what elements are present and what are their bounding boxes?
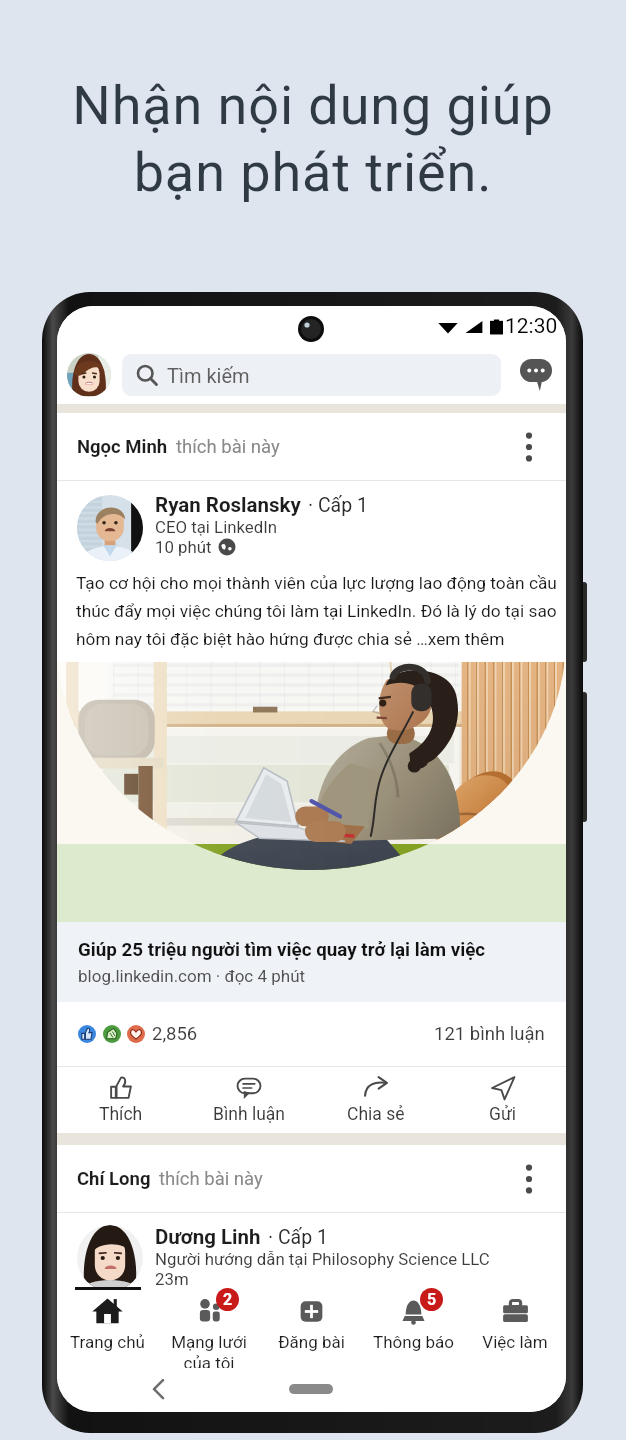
staticText: 23m — [155, 1269, 189, 1289]
staticText: 10 phút — [155, 537, 212, 557]
staticText: Chí Long — [77, 1168, 151, 1190]
staticText: thích bài này — [159, 1168, 263, 1190]
staticText: CEO tại LinkedIn — [155, 517, 278, 537]
staticText: Đăng bài — [278, 1332, 345, 1352]
button[interactable]: Chia sẻ — [312, 1067, 439, 1133]
staticText: · Cấp 1 — [308, 494, 368, 517]
button[interactable]: Gửi — [439, 1067, 566, 1133]
button[interactable]: Ngọc Minh — [57, 413, 566, 480]
button[interactable]: Thích — [57, 1067, 185, 1133]
staticText: Người hướng dẫn tại Philosophy Science L… — [155, 1249, 490, 1269]
staticText: thích bài này — [176, 436, 280, 458]
staticText: · Cấp 1 — [268, 1226, 328, 1249]
staticText: Thích — [99, 1104, 143, 1125]
button[interactable]: Đăng bài — [260, 1290, 362, 1368]
button[interactable]: Bình luận — [185, 1067, 312, 1133]
button[interactable]: 2 — [158, 1290, 260, 1368]
button[interactable]: Giúp 25 triệu người tìm việc quay trở lạ… — [57, 922, 566, 1002]
staticText: Bình luận — [213, 1104, 285, 1125]
button[interactable]: Tìm kiếm — [122, 354, 501, 396]
staticText: Mạng lưới của tôi — [171, 1332, 247, 1368]
staticText: Gửi — [489, 1104, 517, 1125]
button[interactable]: More options — [512, 1162, 546, 1196]
staticText: 121 bình luận — [434, 1023, 545, 1045]
button[interactable]: Messaging — [516, 355, 556, 395]
staticText: Giúp 25 triệu người tìm việc quay trở lạ… — [78, 939, 486, 961]
button[interactable]: More options — [512, 430, 546, 464]
staticText: Chia sẻ — [347, 1104, 405, 1125]
staticText: Trang chủ — [70, 1332, 145, 1352]
staticText: Ryan Roslansky — [155, 493, 301, 517]
staticText: 5 — [427, 1290, 437, 1309]
staticText: Dương Linh — [155, 1225, 261, 1249]
staticText: Tạo cơ hội cho mọi thành viên của lực lư… — [76, 573, 564, 650]
staticText: blog.linkedin.com · đọc 4 phút — [78, 966, 306, 986]
button[interactable]: Việc làm — [464, 1290, 566, 1368]
staticText: Nhận nội dung giúp bạn phát triển. — [0, 74, 626, 204]
staticText: 2,856 — [152, 1023, 198, 1045]
button[interactable]: 5 — [362, 1290, 464, 1368]
button[interactable]: Profile — [67, 353, 111, 397]
staticText: 2 — [223, 1290, 233, 1309]
button[interactable]: Trang chủ — [57, 1290, 158, 1368]
staticText: Việc làm — [482, 1332, 548, 1352]
staticText: Thông báo — [373, 1332, 454, 1352]
staticText: Tìm kiếm — [167, 364, 250, 387]
button[interactable]: Chí Long — [57, 1145, 566, 1212]
button[interactable]: 2,856 — [57, 1002, 566, 1066]
staticText: 12:30 — [505, 314, 558, 339]
staticText: Ngọc Minh — [77, 436, 168, 458]
